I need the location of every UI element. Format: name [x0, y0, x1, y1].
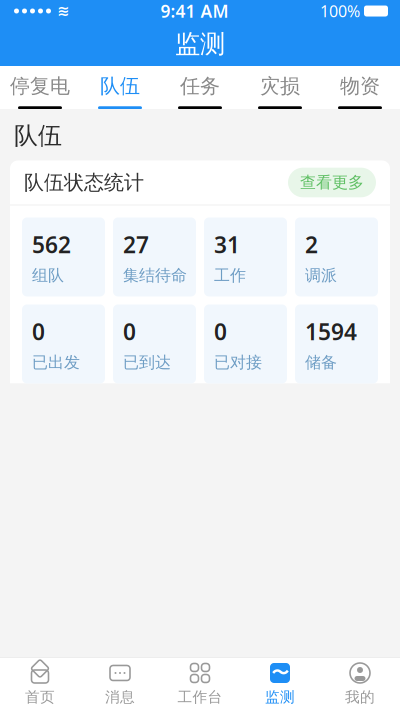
staticText: 队伍 — [14, 121, 62, 150]
staticText: 〜 — [271, 662, 288, 684]
staticText: 组队 — [32, 266, 64, 285]
staticText: 查看更多 — [300, 173, 364, 192]
button[interactable]: 灾损 — [240, 66, 320, 109]
staticText: 1594 — [305, 316, 357, 347]
button[interactable]: 消息 — [80, 658, 160, 710]
staticText: 停复电 — [10, 74, 70, 98]
staticText: 物资 — [340, 74, 380, 98]
button[interactable]: 查看更多 — [288, 168, 376, 197]
staticText: 9:41 AM — [160, 0, 228, 22]
staticText: 已出发 — [32, 353, 80, 372]
button[interactable]: 工作台 — [160, 658, 240, 710]
staticText: 100% — [320, 0, 360, 22]
staticText: 消息 — [105, 688, 135, 706]
button[interactable]: 首页 — [0, 658, 80, 710]
staticText: 27 — [123, 229, 149, 260]
button[interactable]: 队伍 — [80, 66, 160, 109]
staticText: 工作 — [214, 266, 246, 285]
staticText: 已到达 — [123, 353, 171, 372]
staticText: 灾损 — [260, 74, 300, 98]
staticText: 2 — [305, 229, 318, 260]
staticText: 562 — [32, 229, 71, 260]
staticText: 集结待命 — [123, 266, 187, 285]
staticText: 0 — [123, 316, 136, 347]
staticText: 队伍状态统计 — [24, 170, 144, 195]
staticText: 我的 — [345, 688, 375, 706]
button[interactable]: 停复电 — [0, 66, 80, 109]
button[interactable]: 物资 — [320, 66, 400, 109]
staticText: 0 — [32, 316, 45, 347]
staticText: 31 — [214, 229, 240, 260]
staticText: 首页 — [25, 688, 55, 706]
staticText: 已对接 — [214, 353, 262, 372]
button[interactable]: 任务 — [160, 66, 240, 109]
staticText: 监测 — [265, 688, 295, 706]
staticText: 任务 — [180, 74, 220, 98]
button[interactable]: 我的 — [320, 658, 400, 710]
button[interactable]: 监测 — [240, 658, 320, 710]
staticText: 储备 — [305, 353, 337, 372]
staticText: ≋ — [57, 3, 69, 19]
staticText: 监测 — [175, 28, 225, 59]
staticText: 队伍 — [100, 74, 140, 98]
staticText: 调派 — [305, 266, 337, 285]
staticText: 工作台 — [177, 688, 222, 706]
staticText: 0 — [214, 316, 227, 347]
